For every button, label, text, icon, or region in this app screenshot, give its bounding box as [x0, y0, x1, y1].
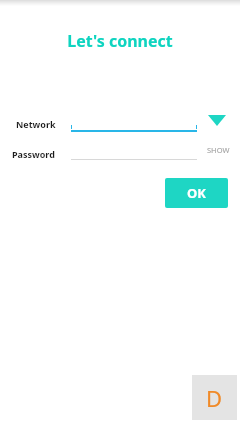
button[interactable]: Show network list — [204, 111, 230, 129]
button[interactable]: SHOW — [204, 142, 233, 158]
staticText: OK — [187, 184, 206, 202]
button[interactable]: Password field — [71, 140, 197, 160]
staticText: D — [206, 383, 223, 413]
staticText: Network — [16, 118, 56, 130]
button[interactable]: D — [192, 375, 237, 420]
button[interactable]: Network name field — [71, 112, 197, 132]
button[interactable]: OK — [165, 178, 228, 208]
staticText: Password — [12, 148, 55, 160]
staticText: SHOW — [207, 145, 230, 155]
staticText: Let's connect — [0, 30, 240, 52]
